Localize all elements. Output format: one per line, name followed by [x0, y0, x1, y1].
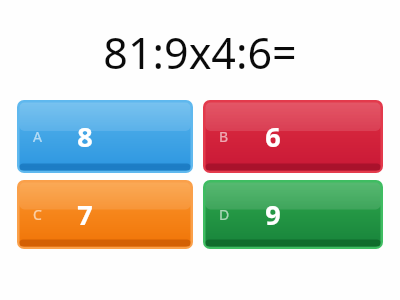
staticText: C — [33, 205, 42, 224]
button[interactable]: D — [203, 180, 383, 249]
staticText: 8 — [77, 118, 93, 155]
staticText: 81:9x4:6= — [103, 23, 297, 82]
button[interactable]: C — [17, 180, 193, 249]
button[interactable]: B — [203, 100, 383, 173]
staticText: A — [33, 127, 42, 146]
staticText: B — [219, 127, 229, 146]
staticText: D — [219, 205, 230, 224]
staticText: 7 — [77, 196, 93, 233]
staticText: 9 — [265, 196, 281, 233]
button[interactable]: A — [17, 100, 193, 173]
staticText: 6 — [265, 118, 281, 155]
